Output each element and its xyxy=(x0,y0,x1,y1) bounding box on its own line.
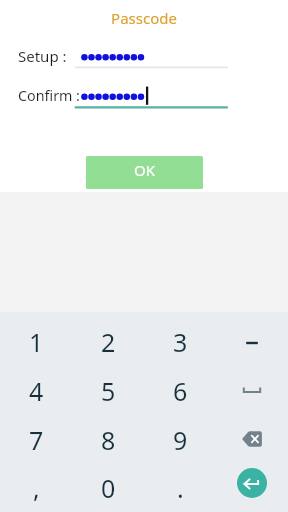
staticText: 9 xyxy=(173,423,188,457)
staticText: 4 xyxy=(29,374,44,408)
button[interactable]: 6 xyxy=(144,366,216,415)
staticText: 5 xyxy=(101,374,116,408)
button[interactable]: 5 xyxy=(72,366,144,415)
button[interactable]: 7 xyxy=(0,415,72,464)
button[interactable]: OK xyxy=(86,156,203,189)
staticText: 2 xyxy=(101,325,116,359)
button[interactable]: , xyxy=(0,464,72,512)
staticText: 7 xyxy=(29,423,44,457)
staticText: . xyxy=(177,471,184,505)
button[interactable]: Minus xyxy=(216,317,288,366)
staticText: OK xyxy=(134,160,156,180)
staticText: 6 xyxy=(173,374,188,408)
button[interactable]: . xyxy=(144,464,216,512)
button[interactable]: 8 xyxy=(72,415,144,464)
staticText: 1 xyxy=(29,325,44,359)
button[interactable]: 4 xyxy=(0,366,72,415)
staticText: Setup : xyxy=(18,46,67,66)
button[interactable]: 9 xyxy=(144,415,216,464)
button[interactable]: Enter xyxy=(216,464,288,512)
button[interactable]: 2 xyxy=(72,317,144,366)
button[interactable]: 1 xyxy=(0,317,72,366)
staticText: 3 xyxy=(173,325,188,359)
button[interactable]: 0 xyxy=(72,464,144,512)
staticText: Confirm : xyxy=(18,86,80,105)
button[interactable]: Backspace xyxy=(216,415,288,464)
staticText: Passcode xyxy=(111,8,177,28)
button[interactable]: 3 xyxy=(144,317,216,366)
button[interactable]: Space xyxy=(216,366,288,415)
staticText: 8 xyxy=(101,423,116,457)
staticText: 0 xyxy=(101,471,116,505)
staticText: , xyxy=(33,471,40,505)
